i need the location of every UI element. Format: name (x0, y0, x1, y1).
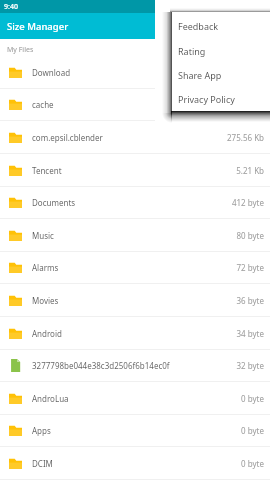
staticText: DCIM (32, 458, 241, 469)
button[interactable]: AndroLua (0, 382, 270, 415)
button[interactable]: 3277798be044e38c3d2506f6b14ec0f (0, 350, 270, 382)
staticText: 36 byte (236, 295, 264, 306)
button[interactable]: Apps (0, 415, 270, 447)
button[interactable]: Alarms (0, 252, 270, 284)
staticText: 0 byte (241, 458, 264, 469)
staticText: 412 byte (231, 197, 264, 208)
staticText: Size Manager (7, 20, 69, 33)
staticText: 0 byte (241, 393, 264, 404)
staticText: Download (32, 67, 264, 78)
button[interactable]: Tencent (0, 154, 270, 187)
staticText: Android (32, 328, 236, 339)
staticText: com.epsil.cblender (32, 132, 227, 143)
staticText: 34 byte (236, 328, 264, 339)
staticText: Documents (32, 197, 231, 208)
button[interactable]: Share App (172, 63, 270, 87)
staticText: Privacy Policy (178, 93, 235, 105)
staticText: Share App (178, 69, 222, 81)
staticText: 72 byte (236, 262, 264, 273)
staticText: Alarms (32, 262, 236, 273)
staticText: Feedback (178, 20, 219, 32)
button[interactable]: Android (0, 317, 270, 350)
staticText: Rating (178, 45, 206, 57)
button[interactable]: Movies (0, 284, 270, 317)
staticText: 3277798be044e38c3d2506f6b14ec0f (32, 360, 236, 371)
staticText: Tencent (32, 165, 236, 176)
staticText: 9:40 (4, 2, 18, 12)
staticText: 80 byte (236, 230, 264, 241)
button[interactable]: Download (0, 56, 270, 89)
staticText: 32 byte (236, 360, 264, 371)
button[interactable]: Privacy Policy (172, 87, 270, 111)
button[interactable]: cache (0, 89, 270, 121)
button[interactable]: Feedback (172, 13, 270, 38)
staticText: 5.21 Kb (236, 165, 264, 176)
staticText: My Files (7, 45, 34, 55)
staticText: 275.56 Kb (227, 132, 264, 143)
button[interactable]: com.epsil.cblender (0, 121, 270, 154)
button[interactable]: Rating (172, 38, 270, 63)
staticText: 0 byte (241, 425, 264, 436)
staticText: AndroLua (32, 393, 241, 404)
staticText: cache (32, 99, 264, 110)
staticText: Music (32, 230, 236, 241)
staticText: Movies (32, 295, 236, 306)
button[interactable]: Music (0, 219, 270, 252)
button[interactable]: Documents (0, 187, 270, 219)
button[interactable]: DCIM (0, 447, 270, 480)
staticText: Apps (32, 425, 241, 436)
